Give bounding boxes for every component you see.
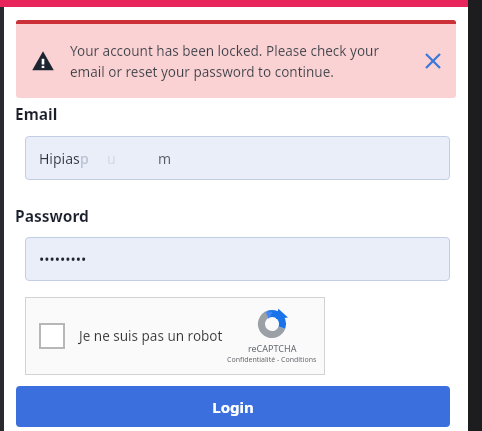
staticText: Je ne suis pas un robot — [79, 327, 223, 345]
staticText: Email — [15, 103, 58, 124]
button[interactable]: Je ne suis pas un robot — [25, 297, 325, 375]
staticText: Login — [212, 397, 254, 417]
staticText: Hipias — [39, 149, 80, 168]
staticText: ••••••••• — [39, 250, 87, 269]
staticText: Confidentialité - Conditions — [227, 355, 317, 365]
staticText: reCAPTCHA — [248, 342, 297, 354]
button[interactable]: ••••••••• — [25, 237, 450, 281]
button[interactable]: Login — [16, 386, 450, 427]
staticText: u — [107, 149, 116, 168]
staticText: Password — [15, 205, 89, 226]
staticText: m — [158, 149, 172, 168]
staticText: Your account has been locked. Please che… — [70, 42, 416, 81]
button[interactable]: Close alert — [416, 44, 450, 78]
staticText: p — [80, 149, 89, 168]
button[interactable]: Hipias — [25, 136, 450, 180]
